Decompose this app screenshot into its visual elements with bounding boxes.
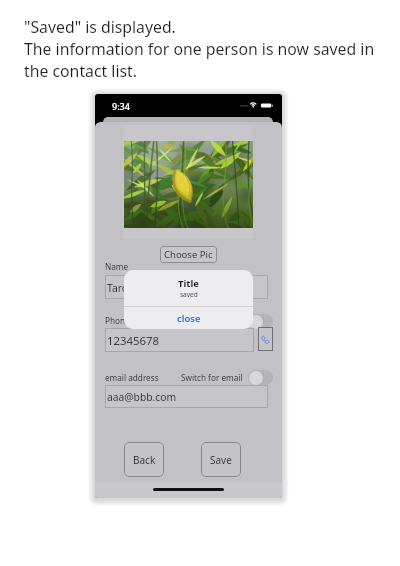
button[interactable]: Back xyxy=(124,442,164,477)
staticText: Save xyxy=(210,453,232,467)
staticText: close xyxy=(177,312,201,325)
staticText: Choose Pic xyxy=(164,248,213,261)
staticText: "Saved" is displayed. xyxy=(24,16,176,38)
staticText: Switch for email xyxy=(181,372,243,383)
staticText: Name xyxy=(105,261,129,272)
staticText: Back xyxy=(133,453,156,467)
button[interactable]: Choose Pic xyxy=(160,246,217,263)
staticText: Taro xyxy=(107,281,129,295)
staticText: saved xyxy=(180,290,198,299)
staticText: Phone xyxy=(105,315,130,326)
staticText: 9:34 xyxy=(112,100,130,112)
button[interactable]: Call xyxy=(258,327,273,351)
button[interactable]: Toggle xyxy=(248,370,273,385)
button[interactable]: Save xyxy=(201,442,241,477)
staticText: aaa@bbb.com xyxy=(107,390,177,404)
staticText: The information for one person is now sa… xyxy=(24,38,375,82)
staticText: 12345678 xyxy=(107,333,160,349)
button[interactable]: close xyxy=(124,307,253,329)
button[interactable]: Toggle xyxy=(248,314,273,329)
staticText: Title xyxy=(178,277,199,290)
staticText: email address xyxy=(105,372,159,383)
